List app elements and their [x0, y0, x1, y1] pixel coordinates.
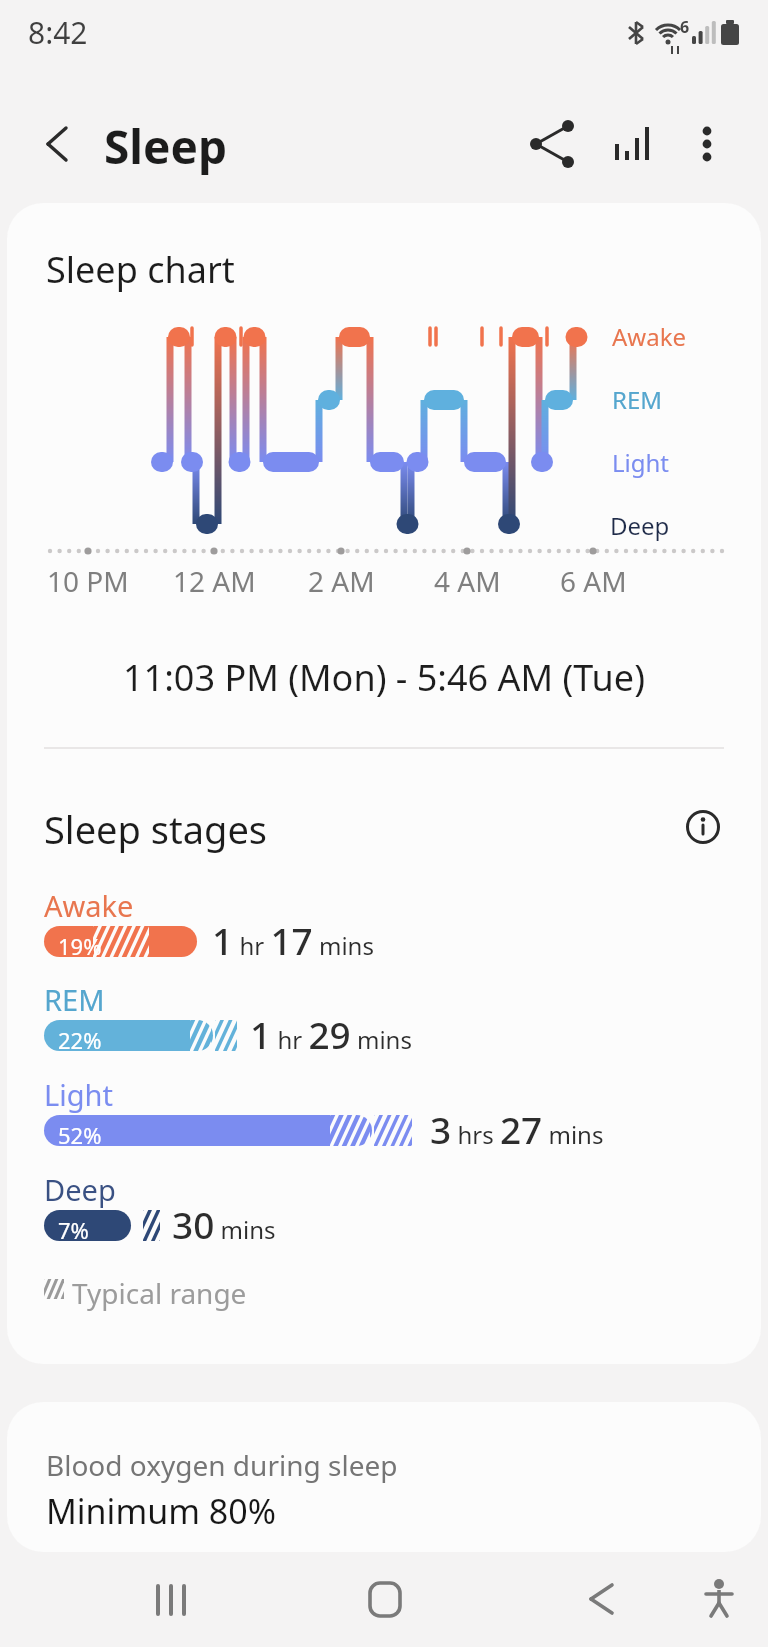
button[interactable]	[574, 1575, 630, 1631]
button[interactable]	[683, 114, 731, 174]
staticText: Deep	[44, 1170, 116, 1209]
staticText: Light	[44, 1075, 113, 1114]
staticText: 30 mins	[172, 1199, 276, 1249]
staticText: Deep	[610, 509, 670, 542]
staticText: 7%	[58, 1215, 89, 1245]
staticText: REM	[612, 383, 663, 416]
staticText: 8:42	[28, 12, 88, 53]
staticText: Sleep	[104, 115, 228, 178]
staticText: Sleep stages	[44, 803, 268, 855]
staticText: Blood oxygen during sleep	[46, 1446, 398, 1484]
staticText: 1 hr 29 mins	[250, 1009, 412, 1059]
staticText: 4 AM	[434, 562, 501, 600]
staticText: Minimum 80%	[46, 1488, 276, 1534]
button[interactable]	[605, 114, 661, 174]
staticText: 6	[680, 16, 690, 38]
staticText: 11:03 PM (Mon) - 5:46 AM (Tue)	[123, 653, 645, 702]
button[interactable]	[692, 1570, 748, 1630]
staticText: Awake	[44, 886, 134, 925]
button[interactable]	[526, 114, 582, 174]
button[interactable]	[354, 1575, 414, 1631]
staticText: 19%	[58, 931, 102, 961]
staticText: 52%	[58, 1120, 102, 1150]
staticText: Sleep chart	[46, 245, 235, 294]
staticText: 3 hrs 27 mins	[430, 1104, 604, 1154]
staticText: 12 AM	[173, 562, 256, 600]
staticText: Light	[612, 446, 670, 479]
staticText: REM	[44, 980, 105, 1019]
button[interactable]	[140, 1575, 200, 1631]
button[interactable]	[34, 116, 86, 172]
staticText: 10 PM	[47, 562, 129, 600]
staticText: 22%	[58, 1025, 102, 1055]
staticText: Typical range	[72, 1274, 247, 1312]
staticText: Awake	[612, 320, 687, 353]
button[interactable]	[680, 804, 726, 850]
staticText: 2 AM	[308, 562, 375, 600]
staticText: 6 AM	[560, 562, 627, 600]
staticText: 1 hr 17 mins	[212, 915, 374, 965]
